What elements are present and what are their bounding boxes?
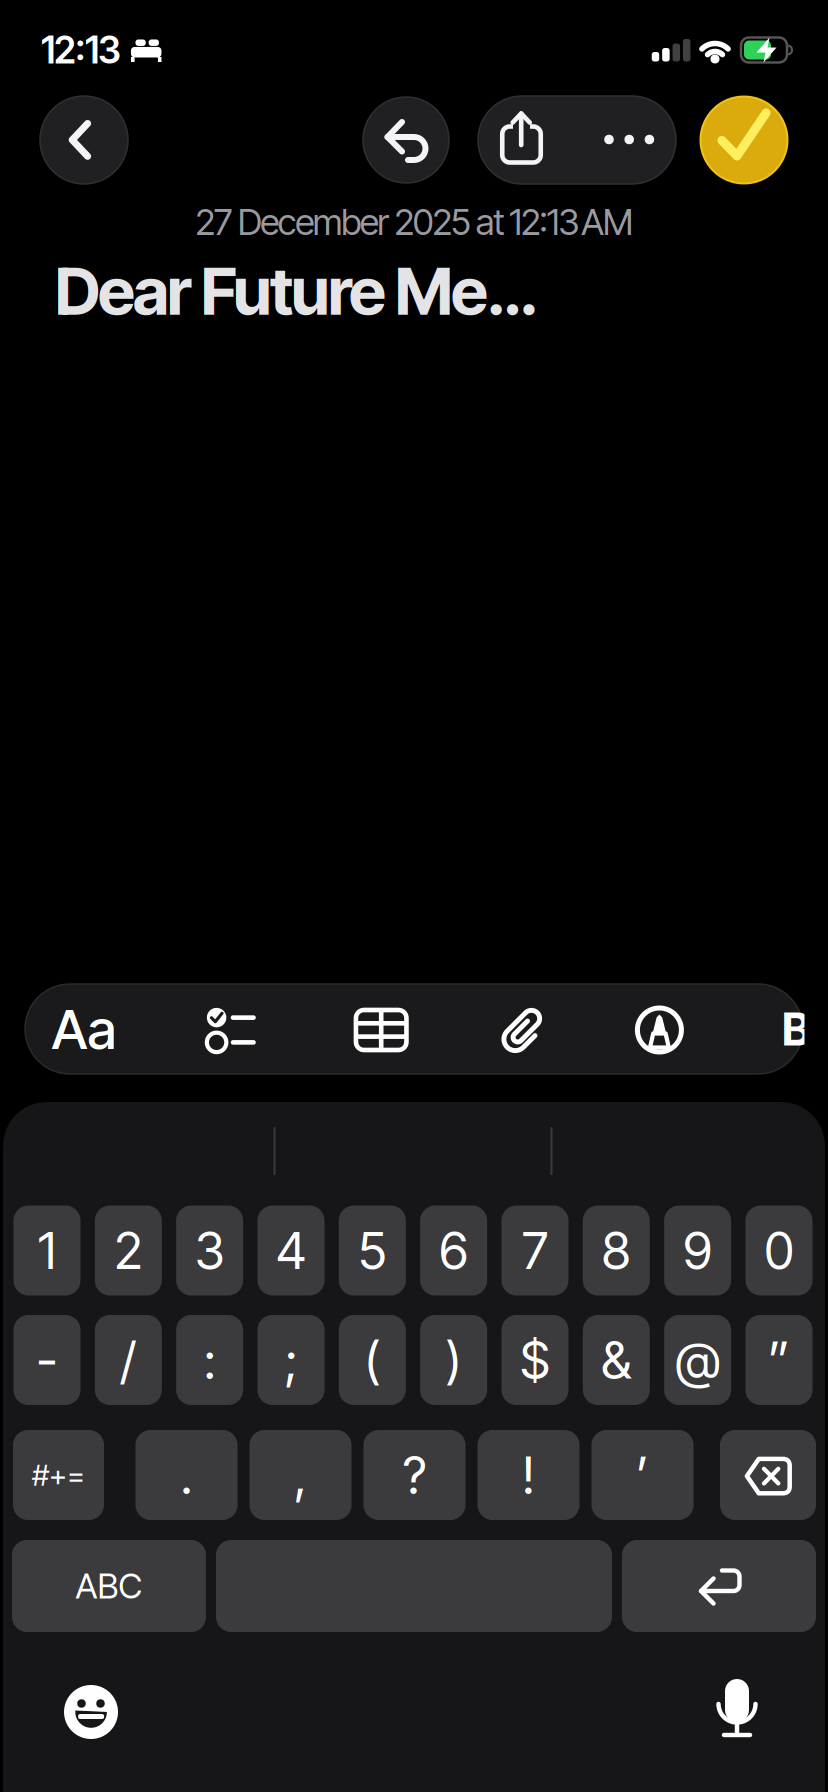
button[interactable]: 0 <box>745 1205 812 1295</box>
button[interactable]: #+= <box>13 1430 104 1520</box>
button[interactable]: @ <box>664 1315 731 1405</box>
staticText: ABC <box>75 1566 142 1606</box>
button[interactable]: Done <box>700 96 787 183</box>
staticText: 6 <box>439 1221 468 1280</box>
staticText: ! <box>522 1445 535 1505</box>
staticText: ’ <box>636 1445 649 1505</box>
staticText: , <box>294 1445 307 1505</box>
button[interactable]: Bold <box>782 1002 810 1056</box>
staticText: 8 <box>602 1221 631 1280</box>
staticText: 27 December 2025 at 12:13 AM <box>195 201 633 243</box>
button[interactable]: 2 <box>95 1205 162 1295</box>
button[interactable]: 8 <box>583 1205 650 1295</box>
staticText: 9 <box>683 1221 712 1280</box>
button[interactable]: Undo <box>363 97 449 183</box>
button[interactable]: Delete <box>720 1430 816 1520</box>
button[interactable]: 6 <box>420 1205 487 1295</box>
button[interactable]: Back <box>40 96 128 184</box>
button[interactable]: 3 <box>176 1205 243 1295</box>
button[interactable]: ABC <box>12 1540 206 1632</box>
staticText: 0 <box>764 1221 793 1280</box>
staticText: Aa <box>51 997 116 1061</box>
staticText: ” <box>768 1330 790 1390</box>
staticText: - <box>36 1330 57 1390</box>
staticText: $ <box>520 1330 550 1390</box>
button[interactable]: Markup <box>614 985 704 1075</box>
staticText: 7 <box>522 1221 548 1280</box>
staticText: : <box>204 1330 216 1390</box>
button[interactable]: ( <box>339 1315 406 1405</box>
button[interactable]: , <box>249 1430 351 1520</box>
staticText: / <box>120 1330 136 1390</box>
button[interactable]: - <box>13 1315 80 1405</box>
staticText: . <box>180 1445 192 1505</box>
button[interactable]: / <box>95 1315 162 1405</box>
staticText: B <box>782 1002 810 1056</box>
staticText: 12:13 <box>41 28 121 72</box>
staticText: 5 <box>358 1221 386 1280</box>
staticText: #+= <box>32 1458 85 1492</box>
staticText: ) <box>446 1330 462 1390</box>
button[interactable]: ! <box>477 1430 579 1520</box>
button[interactable]: . <box>135 1430 237 1520</box>
staticText: ; <box>284 1330 297 1390</box>
button[interactable]: 1 <box>13 1205 80 1295</box>
button[interactable]: Return <box>622 1540 816 1632</box>
staticText: 4 <box>276 1221 306 1280</box>
button[interactable]: ? <box>363 1430 465 1520</box>
button[interactable]: Emoji <box>63 1685 118 1739</box>
button[interactable]: 9 <box>664 1205 731 1295</box>
button[interactable]: Dictate <box>708 1677 766 1739</box>
staticText: ? <box>403 1445 426 1505</box>
button[interactable]: 4 <box>257 1205 324 1295</box>
staticText: 3 <box>195 1221 225 1280</box>
button[interactable]: : <box>176 1315 243 1405</box>
button[interactable]: Share <box>478 96 577 184</box>
button[interactable]: Checklist <box>188 985 278 1075</box>
button[interactable]: Table <box>336 985 426 1075</box>
button[interactable]: $ <box>501 1315 568 1405</box>
staticText: ( <box>364 1330 380 1390</box>
staticText: Dear Future Me… <box>55 252 536 330</box>
button[interactable]: ” <box>745 1315 812 1405</box>
staticText: 2 <box>114 1221 142 1280</box>
button[interactable]: ; <box>257 1315 324 1405</box>
staticText: 1 <box>38 1221 56 1280</box>
button[interactable]: ) <box>420 1315 487 1405</box>
button[interactable]: More <box>577 96 676 184</box>
staticText: & <box>601 1330 631 1390</box>
button[interactable]: ’ <box>591 1430 693 1520</box>
button[interactable]: 7 <box>501 1205 568 1295</box>
button[interactable]: Format <box>51 997 116 1061</box>
button[interactable]: 5 <box>339 1205 406 1295</box>
button[interactable]: Attach <box>479 985 569 1075</box>
button[interactable]: & <box>583 1315 650 1405</box>
staticText: @ <box>675 1330 720 1390</box>
